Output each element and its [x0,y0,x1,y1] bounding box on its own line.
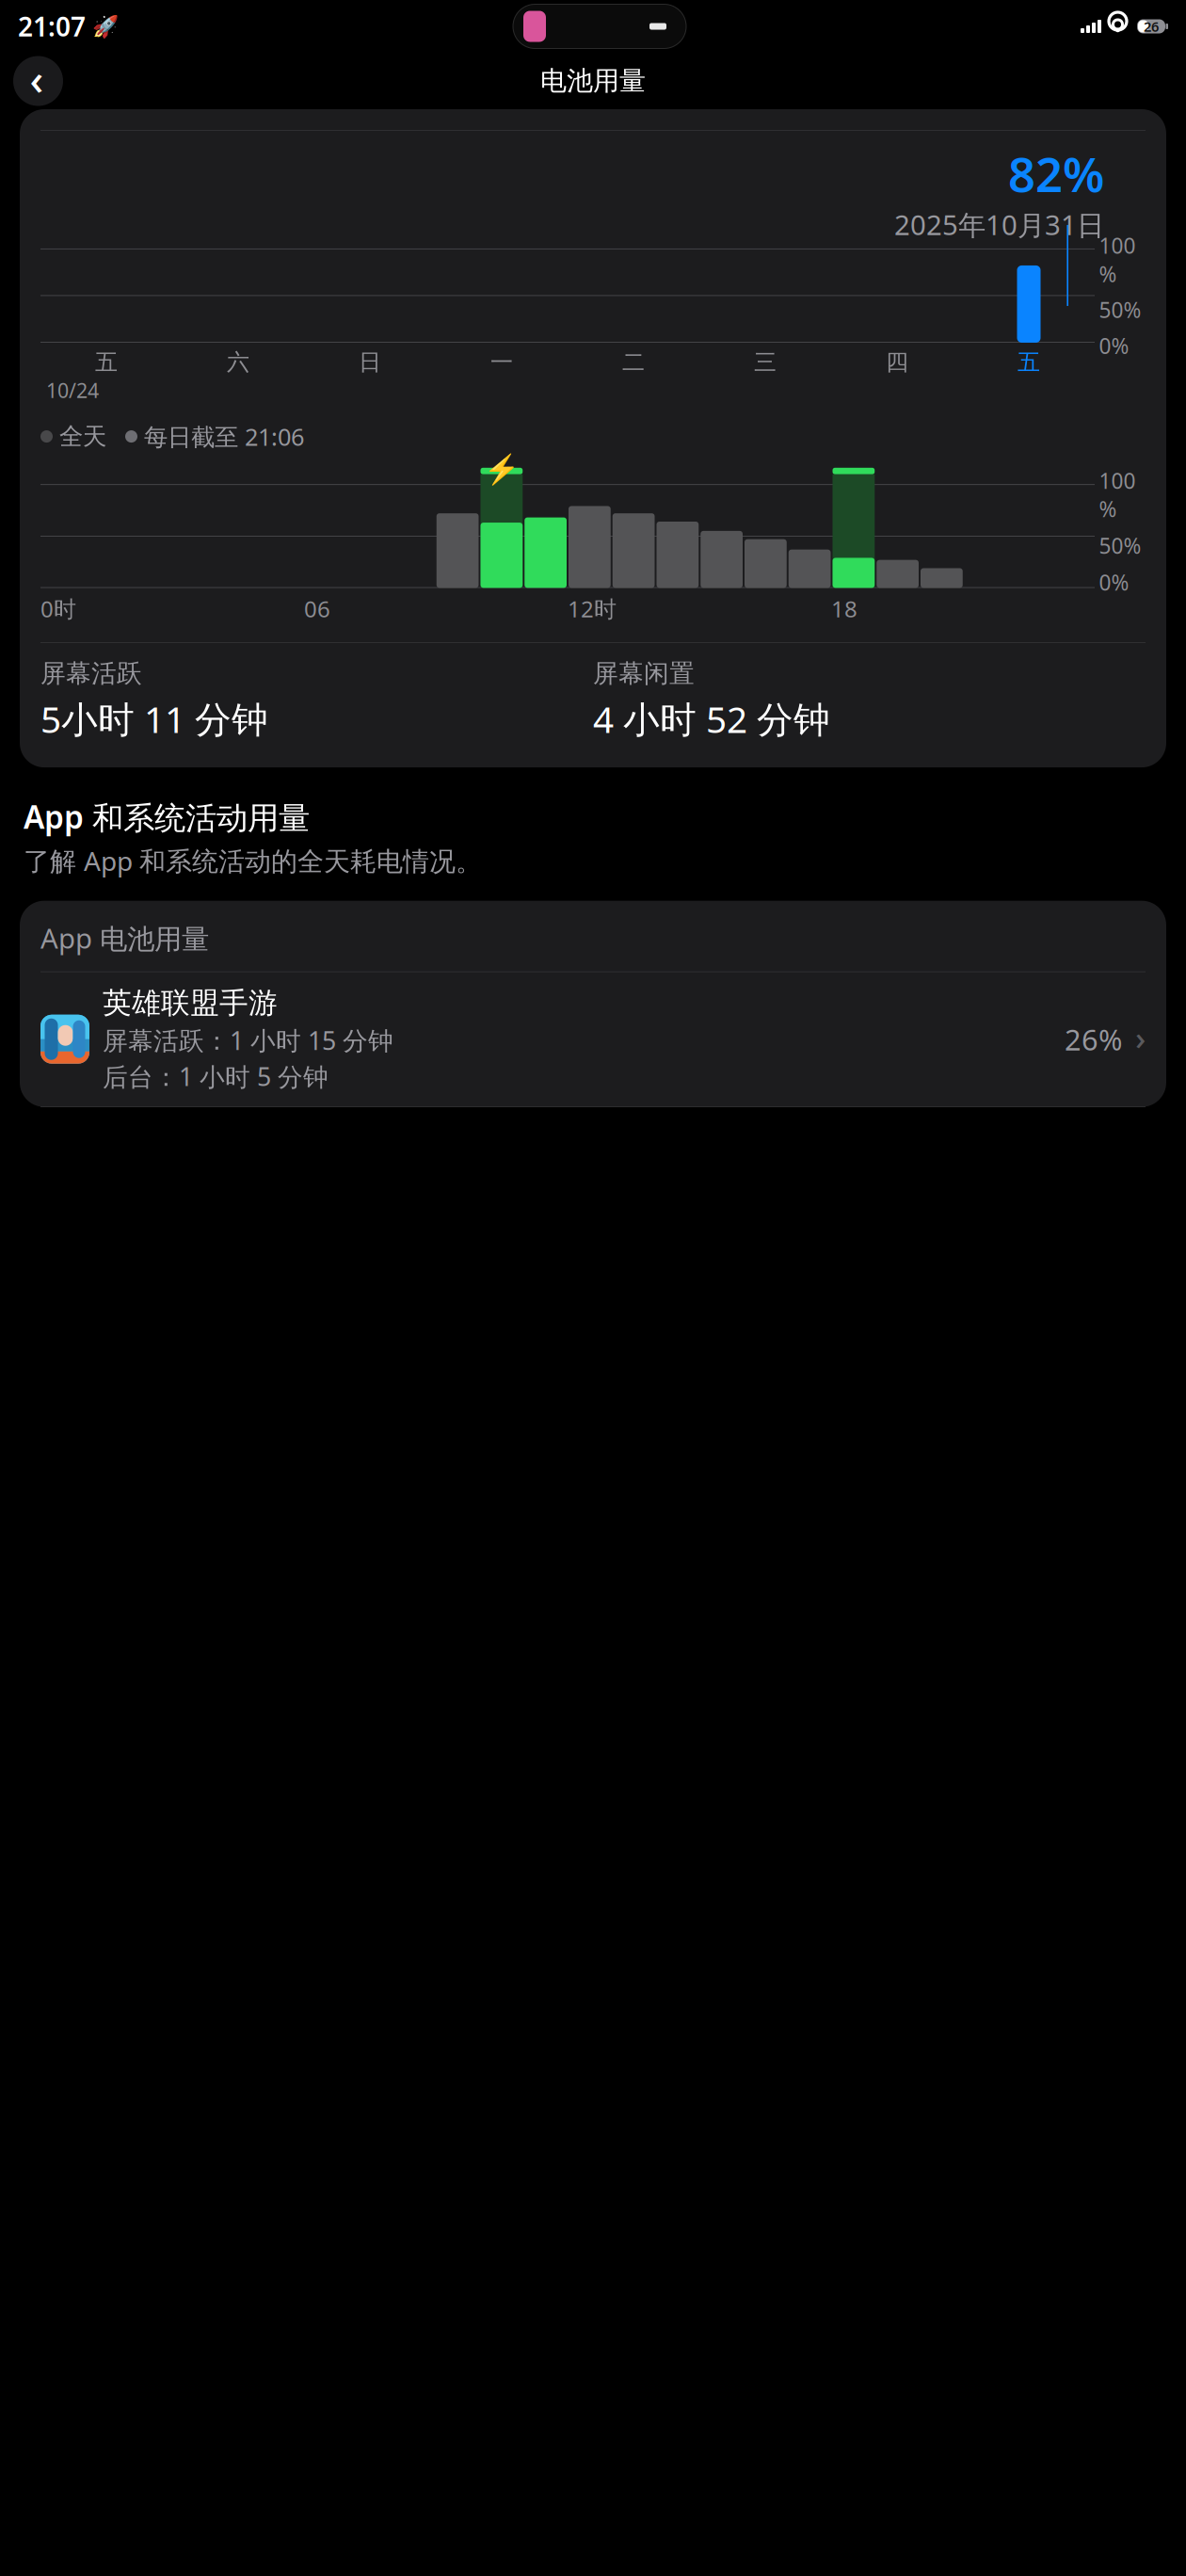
staticText: 100% [1099,466,1136,523]
staticText: 五 [1018,348,1040,376]
staticText: 一 [490,348,513,376]
staticText: 全天 [59,422,106,451]
staticText: 屏幕活跃：1 小时 15 分钟 [103,1024,393,1057]
staticText: 50% [1099,296,1141,324]
staticText: 12时 [568,594,617,624]
staticText: 二 [622,348,645,376]
staticText: 18 [831,594,857,624]
staticText: 0% [1099,568,1129,596]
staticText: 六 [227,348,249,376]
staticText: ⚡ [484,453,519,486]
button[interactable]: 返回 [13,56,63,106]
staticText: App 和系统活动用量 [24,796,310,837]
staticText: 屏幕活跃 [40,658,142,689]
staticText: 0% [1099,331,1129,360]
staticText: 10/24 [46,377,99,404]
staticText: 三 [754,348,777,376]
staticText: 26% [1065,1020,1122,1058]
staticText: App 电池用量 [40,920,209,956]
staticText: › [1135,1016,1146,1059]
staticText: 电池用量 [540,65,646,97]
staticText: 4 小时 52 分钟 [593,695,830,743]
staticText: 屏幕闲置 [593,658,695,689]
staticText: 0时 [40,594,76,624]
staticText: 英雄联盟手游 [103,985,278,1021]
button[interactable]: 英雄联盟手游 [40,972,1146,1106]
staticText: 日 [359,348,381,376]
staticText: 每日截至 21:06 [144,421,304,452]
staticText: 5小时 11 分钟 [40,695,268,743]
staticText: 06 [304,594,330,624]
staticText: 50% [1099,531,1141,560]
staticText: 21:07 [18,9,86,44]
staticText: 了解 App 和系统活动的全天耗电情况。 [24,843,482,878]
staticText: 后台：1 小时 5 分钟 [103,1060,329,1093]
staticText: 🚀 [92,14,119,39]
staticText: 2025年10月31日 [894,206,1104,243]
staticText: 四 [886,348,908,376]
staticText: 五 [95,348,118,376]
staticText: 82% [1008,142,1104,205]
staticText: 26 [1144,17,1159,36]
staticText: 100% [1099,231,1136,288]
staticText: ‹ [30,50,44,107]
